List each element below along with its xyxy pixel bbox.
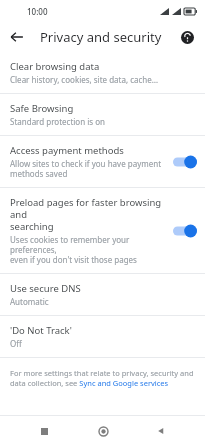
button[interactable]: Help	[174, 24, 200, 50]
staticText: Privacy and security	[40, 28, 162, 46]
staticText: Use secure DNS	[10, 282, 81, 295]
button[interactable]: Home	[88, 416, 118, 446]
staticText: Preload pages for faster browsing and se…	[10, 196, 167, 233]
button[interactable]: Preload pages for faster browsing and se…	[0, 188, 205, 273]
button[interactable]: Safe Browsing	[0, 94, 205, 135]
staticText: Automatic	[10, 296, 49, 307]
button[interactable]: Clear browsing data	[0, 52, 205, 93]
button[interactable]: Back	[4, 24, 30, 50]
button[interactable]: Use secure DNS	[0, 274, 205, 315]
button[interactable]: Access payment methods	[0, 136, 205, 187]
staticText: Allow sites to check if you have payment…	[10, 158, 162, 179]
staticText: Clear browsing data	[10, 60, 100, 73]
staticText: Access payment methods	[10, 144, 124, 157]
staticText: Safe Browsing	[10, 102, 74, 115]
button[interactable]: 'Do Not Track'	[0, 316, 205, 357]
staticText: Off	[10, 338, 22, 349]
staticText: Clear history, cookies, site data, cache…	[10, 74, 159, 85]
button[interactable]: Toggle	[173, 154, 197, 170]
button[interactable]: Back	[146, 416, 176, 446]
staticText: 10:00	[27, 6, 48, 17]
staticText: Standard protection is on	[10, 116, 105, 127]
staticText: For more settings that relate to privacy…	[10, 368, 195, 388]
button[interactable]: Toggle	[173, 223, 197, 239]
staticText: Uses cookies to remember your preference…	[10, 234, 167, 265]
staticText: 'Do Not Track'	[10, 324, 72, 337]
button[interactable]: Recent apps	[29, 416, 59, 446]
button[interactable]: For more settings that relate to privacy…	[0, 358, 205, 398]
